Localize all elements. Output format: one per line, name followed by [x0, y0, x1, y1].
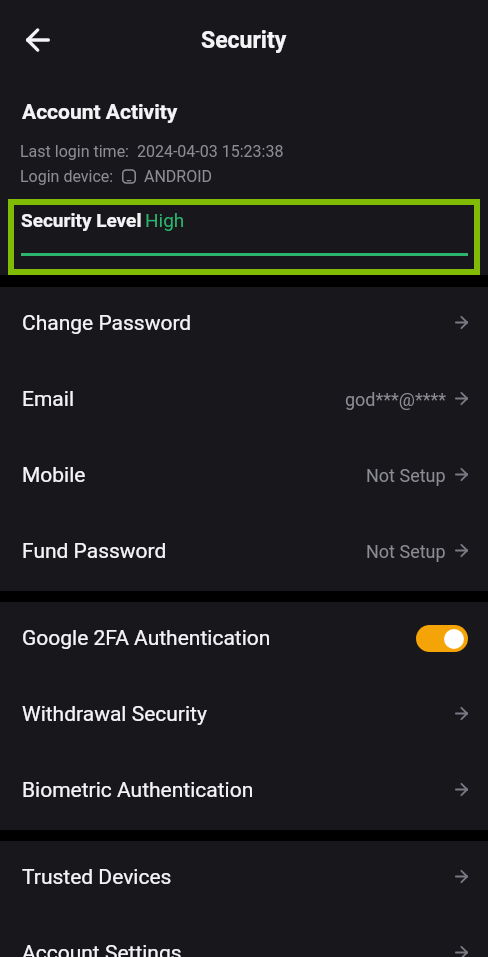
staticText: Account Activity: [22, 100, 178, 125]
staticText: Login device:: [20, 167, 122, 186]
button[interactable]: Toggle Google 2FA Authentication: [416, 625, 468, 652]
button[interactable]: Trusted Devices: [0, 841, 488, 917]
staticText: god***@****: [345, 389, 446, 410]
button[interactable]: Change Password: [0, 287, 488, 363]
staticText: Fund Password: [22, 539, 167, 564]
button[interactable]: Withdrawal Security: [0, 678, 488, 754]
staticText: ANDROID: [136, 167, 213, 186]
button[interactable]: Account Settings: [0, 917, 488, 957]
staticText: Not Setup: [366, 465, 446, 486]
staticText: High: [145, 209, 185, 231]
staticText: Account Settings: [22, 941, 182, 957]
staticText: Last login time: 2024-04-03 15:23:38: [20, 142, 284, 161]
button[interactable]: Fund Password: [0, 515, 488, 591]
staticText: Not Setup: [366, 541, 446, 562]
button[interactable]: Back: [14, 16, 62, 64]
staticText: Google 2FA Authentication: [22, 626, 271, 651]
staticText: Withdrawal Security: [22, 702, 207, 727]
button[interactable]: Email: [0, 363, 488, 439]
staticText: Change Password: [22, 311, 192, 336]
button[interactable]: Mobile: [0, 439, 488, 515]
staticText: Biometric Authentication: [22, 778, 254, 803]
staticText: Security Level: [21, 209, 142, 231]
staticText: Trusted Devices: [22, 865, 172, 890]
staticText: Security: [201, 27, 287, 54]
button[interactable]: Biometric Authentication: [0, 754, 488, 830]
button[interactable]: Google 2FA Authentication: [0, 602, 488, 678]
staticText: Email: [22, 387, 74, 412]
button[interactable]: Security Level: [8, 199, 480, 275]
staticText: Mobile: [22, 463, 86, 488]
